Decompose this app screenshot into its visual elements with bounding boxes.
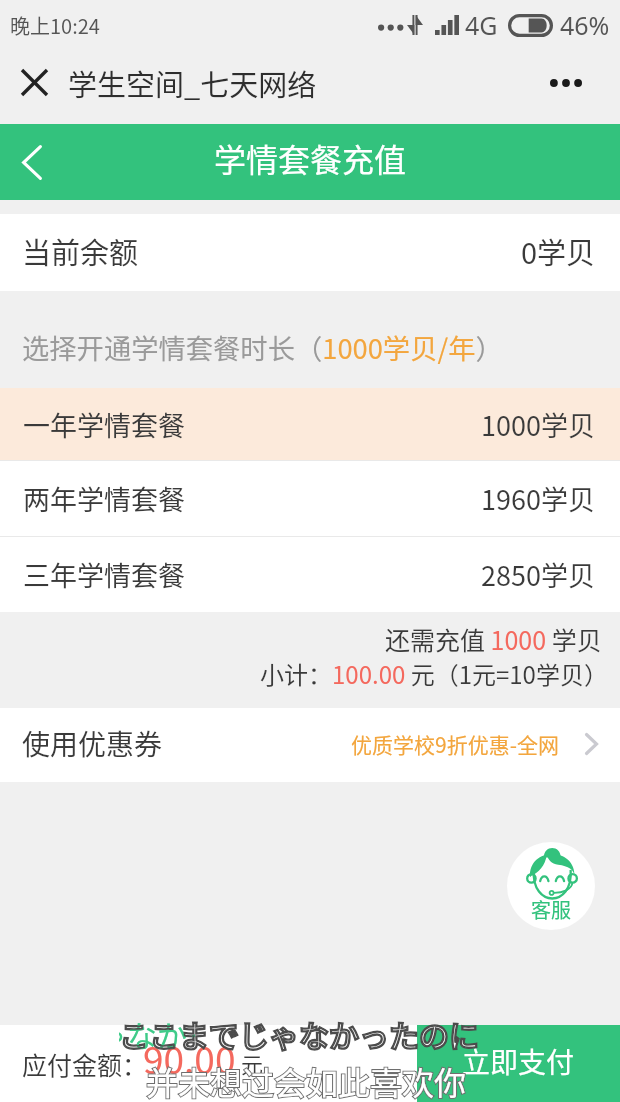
- staticText: 0学贝: [521, 230, 596, 272]
- button[interactable]: 一年学情套餐: [0, 388, 620, 460]
- staticText: 晚上10:24: [10, 11, 100, 40]
- button[interactable]: 两年学情套餐: [0, 461, 620, 536]
- button[interactable]: 三年学情套餐: [0, 537, 620, 612]
- staticText: 46%: [560, 8, 610, 42]
- staticText: 1960学贝: [481, 479, 595, 518]
- staticText: 90.00: [143, 1031, 236, 1085]
- button[interactable]: 关闭: [6, 54, 62, 110]
- staticText: 2850学贝: [481, 555, 595, 594]
- staticText: 元: [241, 1047, 264, 1079]
- staticText: 客服: [531, 895, 571, 924]
- button[interactable]: 当前余额: [0, 214, 620, 291]
- staticText: 4G: [465, 8, 498, 42]
- staticText: ここまでじゃなかったのに: [119, 1012, 195, 1055]
- staticText: 还需充值 1000 学贝: [385, 621, 602, 657]
- staticText: 并未想过会如此喜欢你: [146, 1058, 467, 1102]
- staticText: ここまでじゃなかったのに: [119, 1012, 479, 1055]
- button[interactable]: 更多: [538, 55, 594, 111]
- staticText: 应付金额：: [22, 1046, 148, 1082]
- button[interactable]: 返回: [2, 132, 62, 192]
- staticText: 使用优惠券: [22, 723, 163, 764]
- staticText: ここまでじゃなかったのに: [119, 1012, 479, 1055]
- staticText: 三年学情套餐: [23, 555, 185, 594]
- staticText: 优质学校9折优惠-全网: [351, 729, 559, 759]
- staticText: 学生空间_七天网络: [68, 62, 317, 104]
- staticText: 两年学情套餐: [23, 479, 185, 518]
- staticText: ここまでじゃなかったのに: [119, 1012, 479, 1055]
- staticText: 并未想过会如此喜欢你: [146, 1058, 467, 1102]
- staticText: 当前余额: [22, 230, 139, 272]
- staticText: 学情套餐充值: [214, 135, 407, 181]
- staticText: 1000学贝: [481, 405, 595, 444]
- staticText: 小计：100.00 元（1元=10学贝）: [260, 656, 608, 691]
- button[interactable]: 立即支付: [417, 1025, 620, 1102]
- staticText: 选择开通学情套餐时长（1000学贝/年）: [22, 327, 503, 367]
- staticText: 立即支付: [462, 1041, 575, 1082]
- button[interactable]: 客服: [507, 842, 595, 930]
- button[interactable]: 使用优惠券: [0, 708, 620, 782]
- staticText: 一年学情套餐: [23, 405, 185, 444]
